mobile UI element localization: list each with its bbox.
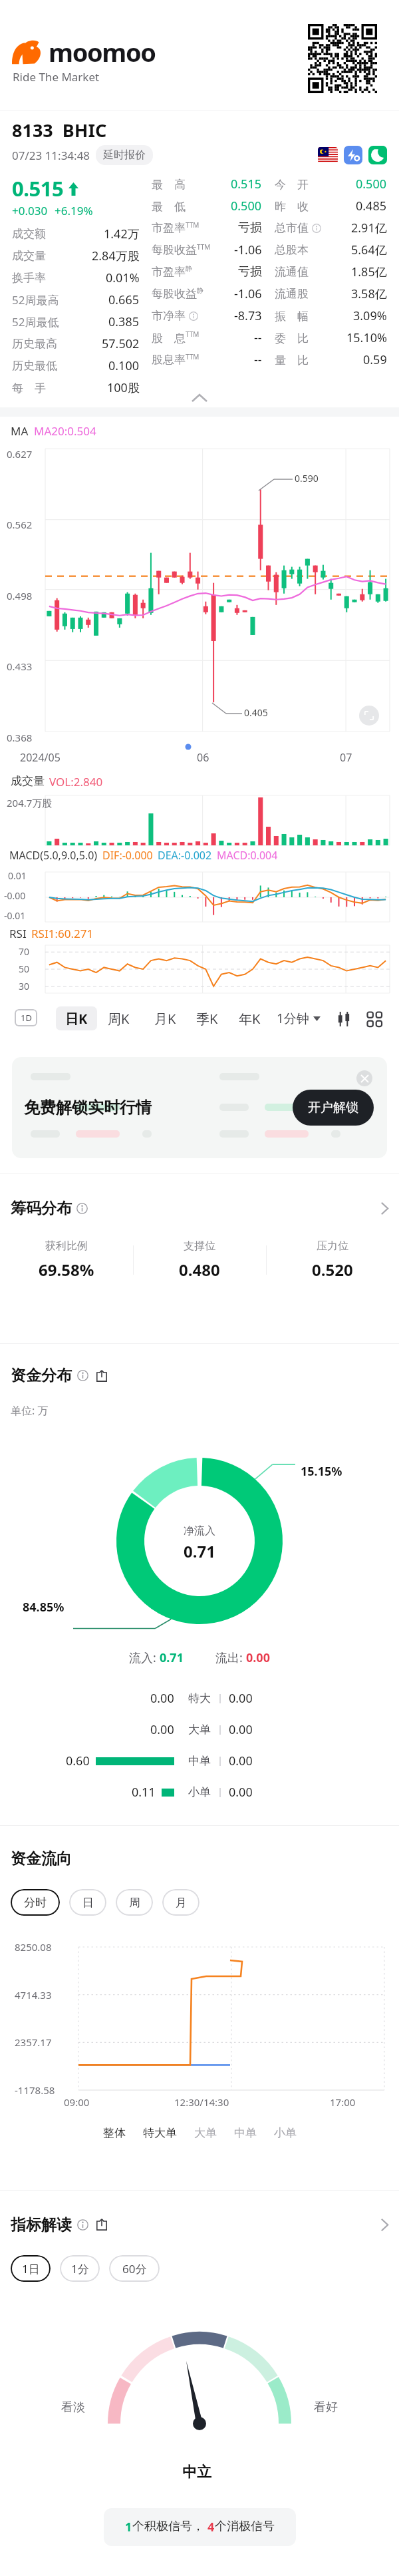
button[interactable]: 1分钟 [275, 1008, 322, 1029]
staticText: 单位: 万 [11, 1403, 49, 1418]
button[interactable]: 年K [234, 1006, 265, 1030]
button[interactable]: Close promotion [356, 1070, 372, 1086]
staticText: 0.500 [231, 198, 262, 214]
button[interactable]: Chart indicators [332, 1008, 355, 1030]
staticText: 1日 [22, 2261, 40, 2276]
staticText: 筹码分布 [11, 1199, 72, 1218]
staticText: TTM [186, 352, 199, 361]
staticText: MACD(5.0,9.0,5.0) [9, 848, 98, 863]
staticText: 历史最低 [12, 359, 57, 373]
staticText: 市净率 [152, 309, 186, 323]
staticText: 1分 [71, 2261, 89, 2276]
staticText: MA20:0.504 [34, 423, 96, 439]
staticText: -1178.58 [15, 2083, 55, 2097]
staticText: 特大 [188, 1691, 211, 1705]
staticText: 5.64亿 [351, 242, 387, 258]
staticText: 资金分布 [11, 1366, 72, 1385]
button[interactable]: Fullscreen chart [359, 706, 379, 726]
staticText: 0.368 [7, 731, 33, 744]
staticText: 2024/05 [20, 750, 61, 765]
button[interactable]: 周K [103, 1006, 134, 1030]
button[interactable]: 周 [116, 1889, 153, 1916]
button[interactable]: 月 [162, 1889, 199, 1916]
button[interactable]: Share fund distribution [96, 1370, 108, 1382]
button[interactable]: 免费解锁实时行情 [12, 1057, 387, 1158]
staticText: 0.11 [132, 1784, 156, 1801]
staticText: 52周最高 [12, 292, 59, 308]
button[interactable]: 整体 [94, 2123, 134, 2143]
staticText: 0.433 [7, 660, 33, 673]
staticText: RSI [9, 926, 27, 941]
staticText: +0.030 [12, 203, 48, 218]
staticText: 0.00 [150, 1690, 174, 1707]
staticText: 昨 收 [275, 198, 309, 214]
staticText: 分时 [24, 1896, 47, 1910]
staticText: 成交量 [11, 774, 45, 788]
staticText: DEA:-0.002 [158, 848, 212, 863]
button[interactable]: 月K [150, 1006, 180, 1030]
staticText: VOL:2.840 [49, 774, 103, 789]
staticText: 流入: [129, 1649, 160, 1666]
button[interactable]: 1日 [11, 2255, 51, 2282]
staticText: 0.405 [244, 706, 268, 719]
staticText: 2.91亿 [351, 220, 387, 236]
button[interactable]: 日 [69, 1889, 106, 1916]
button[interactable]: 指标解读 [0, 2209, 399, 2241]
staticText: 0.00 [229, 1753, 253, 1769]
staticText: Ride The Market [13, 69, 100, 85]
button[interactable]: More chart tools [363, 1008, 386, 1030]
button[interactable]: 日K [56, 1006, 97, 1030]
staticText: 84.85% [23, 1599, 65, 1615]
button[interactable]: 延时报价 [96, 145, 153, 165]
staticText: 12:30/14:30 [174, 2095, 229, 2109]
button[interactable]: 小单 [265, 2123, 305, 2143]
staticText: 每 手 [12, 380, 46, 395]
button[interactable]: 中单 [225, 2123, 265, 2143]
button[interactable]: 开户解锁 [293, 1090, 374, 1126]
staticText: 日 [82, 1896, 94, 1910]
button[interactable]: 1D [15, 1009, 37, 1026]
staticText: 整体 [103, 2126, 126, 2140]
button[interactable]: Level 0 quotes [344, 146, 362, 164]
button[interactable]: Share indicators [96, 2219, 108, 2231]
staticText: 月 [176, 1896, 187, 1910]
staticText: 指标解读 [11, 2215, 72, 2235]
button[interactable]: 大单 [186, 2123, 225, 2143]
staticText: 总股本 [275, 243, 309, 257]
staticText: 3.58亿 [351, 286, 387, 302]
button[interactable]: 特大单 [134, 2123, 186, 2143]
staticText: 委 比 [275, 330, 309, 345]
staticText: 4 [207, 2519, 215, 2535]
button[interactable]: Night trading [368, 146, 387, 164]
staticText: 市盈率 [152, 221, 186, 235]
button[interactable]: 60分 [109, 2255, 160, 2282]
staticText: 0.01 [8, 869, 27, 882]
staticText: 压力位 [317, 1239, 348, 1253]
staticText: 4714.33 [15, 1988, 52, 2002]
button[interactable]: Collapse quotes [181, 390, 218, 406]
staticText: 8250.08 [15, 1940, 52, 1954]
staticText: 1.85亿 [351, 264, 387, 280]
staticText: 净流入 [184, 1524, 215, 1538]
staticText: 大单 [194, 2126, 217, 2140]
staticText: 0.00 [150, 1721, 174, 1738]
staticText: -- [254, 351, 262, 368]
button[interactable]: 季K [192, 1006, 222, 1030]
staticText: 15.10% [346, 329, 387, 346]
staticText: 2357.17 [15, 2036, 52, 2049]
staticText: 0.00 [229, 1784, 253, 1801]
staticText: TTM [186, 329, 199, 339]
staticText: 0.71 [184, 1540, 215, 1562]
button[interactable]: 分时 [11, 1889, 60, 1916]
button[interactable]: 筹码分布 [0, 1191, 399, 1225]
staticText: 个积极信号， [132, 2519, 204, 2534]
button[interactable]: Malaysia market [318, 147, 338, 163]
staticText: -- [254, 329, 262, 346]
button[interactable]: 1分 [60, 2255, 100, 2282]
staticText: 0.500 [356, 176, 387, 192]
staticText: 0.498 [7, 589, 33, 602]
staticText: 量 比 [275, 352, 309, 367]
staticText: 70 [19, 945, 30, 958]
staticText: 30 [19, 980, 30, 992]
staticText: 0.01% [106, 270, 140, 286]
